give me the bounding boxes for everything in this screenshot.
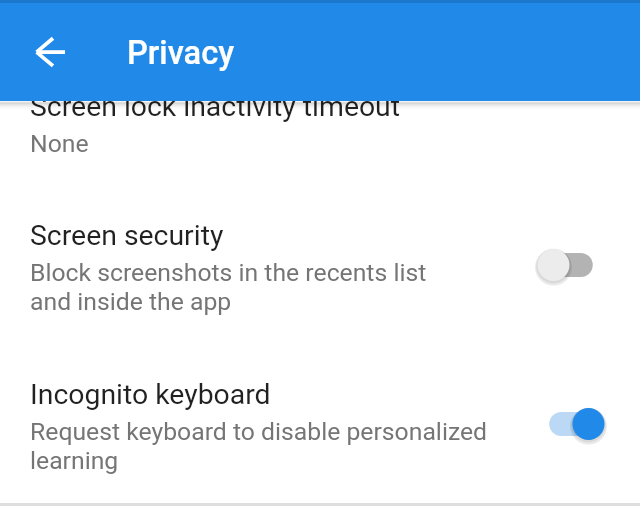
staticText: Block screenshots in the recents list an… — [30, 258, 427, 316]
staticText: Screen lock inactivity timeout — [30, 88, 401, 123]
button[interactable]: Screen security — [0, 217, 640, 347]
button[interactable]: Screen security — [534, 237, 608, 293]
button[interactable]: Screen lock inactivity timeout — [0, 88, 640, 188]
staticText: None — [30, 129, 89, 158]
staticText: Request keyboard to disable personalized… — [30, 417, 488, 475]
button[interactable]: Incognito keyboard — [534, 396, 608, 452]
button[interactable]: Incognito keyboard — [0, 376, 640, 502]
staticText: Screen security — [30, 217, 224, 252]
button[interactable]: Navigate up — [17, 28, 65, 76]
staticText: Incognito keyboard — [30, 376, 271, 411]
staticText: Privacy — [127, 34, 235, 72]
